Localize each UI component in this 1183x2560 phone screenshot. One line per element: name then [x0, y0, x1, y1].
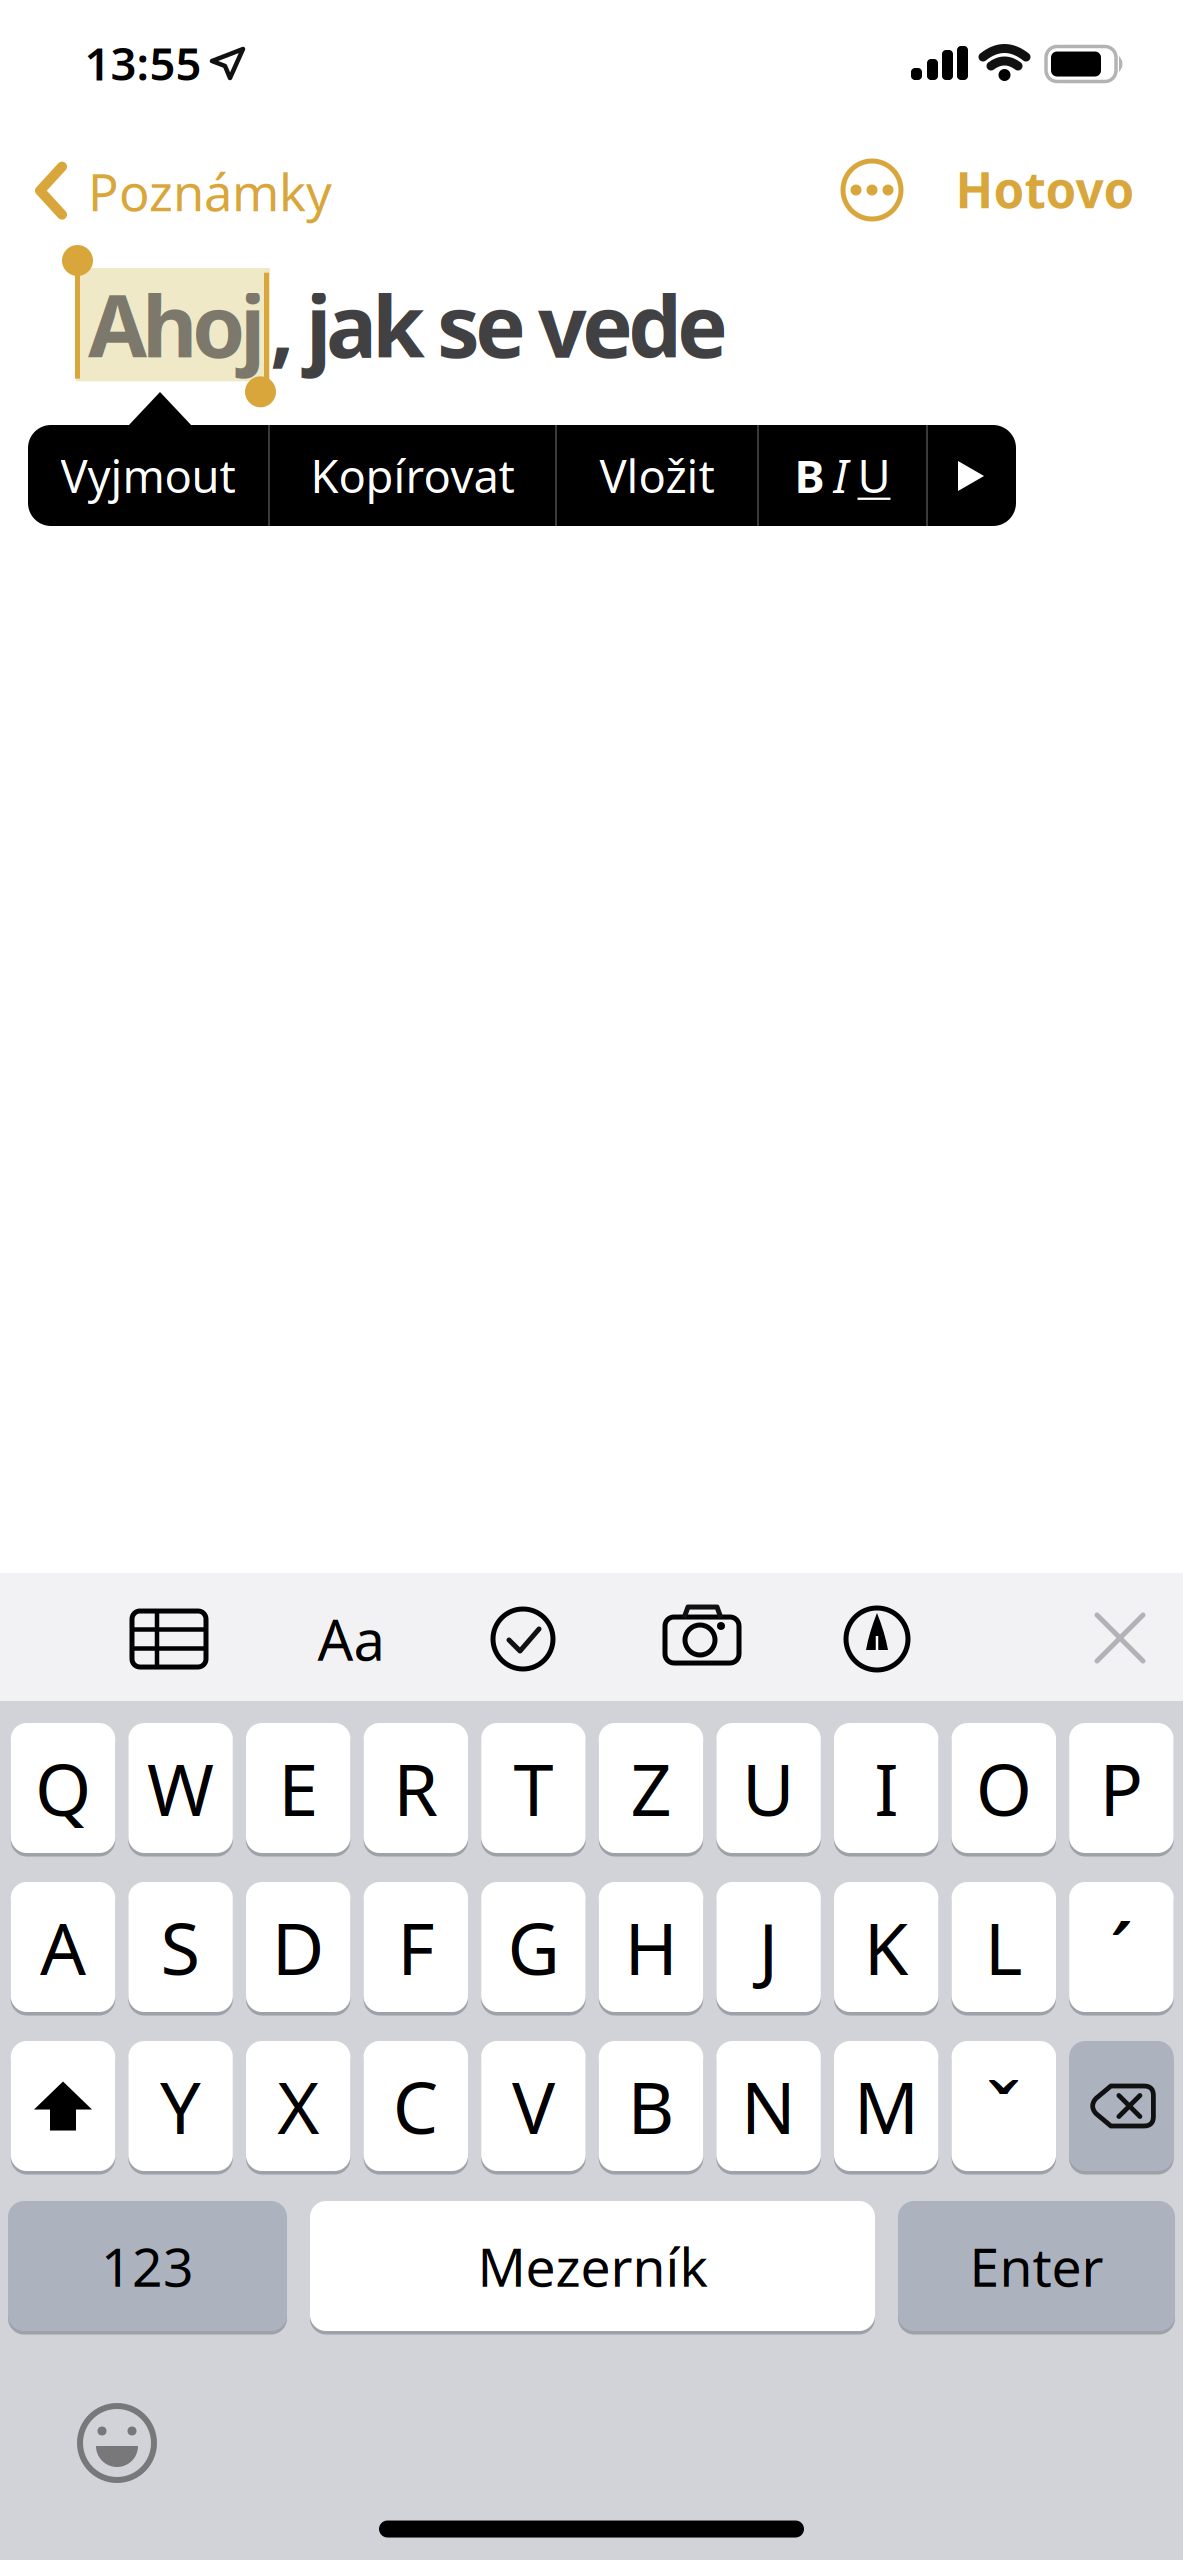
- button[interactable]: Delete: [1069, 2041, 1174, 2171]
- button[interactable]: F: [363, 1882, 468, 2012]
- staticText: P: [1099, 1740, 1143, 1836]
- staticText: K: [864, 1899, 909, 1995]
- staticText: X: [277, 2058, 319, 2154]
- staticText: L: [985, 1899, 1023, 1995]
- staticText: Z: [630, 1740, 671, 1836]
- button[interactable]: K: [834, 1882, 938, 2012]
- staticText: C: [393, 2058, 439, 2154]
- staticText: N: [741, 2058, 796, 2154]
- button[interactable]: Hotovo: [955, 156, 1134, 222]
- staticText: U: [857, 445, 890, 506]
- staticText: Hotovo: [955, 156, 1134, 222]
- button[interactable]: Formatting: [759, 425, 926, 526]
- staticText: Mezerník: [477, 2231, 707, 2301]
- button[interactable]: G: [481, 1882, 586, 2012]
- button[interactable]: Shift: [11, 2041, 115, 2171]
- staticText: Enter: [969, 2231, 1103, 2301]
- staticText: B: [794, 445, 824, 506]
- button[interactable]: More: [837, 155, 907, 225]
- staticText: , jak se vede: [270, 268, 728, 381]
- button[interactable]: Vyjmout: [28, 425, 268, 526]
- staticText: B: [627, 2058, 674, 2154]
- button[interactable]: E: [246, 1723, 350, 1853]
- button[interactable]: W: [128, 1723, 233, 1853]
- button[interactable]: V: [481, 2041, 586, 2171]
- button[interactable]: H: [599, 1882, 703, 2012]
- button[interactable]: P: [1069, 1723, 1174, 1853]
- staticText: A: [40, 1899, 86, 1995]
- staticText: D: [272, 1899, 325, 1995]
- staticText: F: [397, 1899, 434, 1995]
- button[interactable]: 123: [8, 2201, 287, 2331]
- staticText: W: [147, 1740, 214, 1836]
- button[interactable]: Checklist: [473, 1589, 573, 1689]
- staticText: ´: [1109, 1897, 1133, 2011]
- staticText: 123: [101, 2231, 194, 2301]
- button[interactable]: U: [716, 1723, 821, 1853]
- staticText: I: [874, 1740, 898, 1836]
- button[interactable]: Enter: [898, 2201, 1175, 2331]
- staticText: Kopírovat: [310, 445, 514, 506]
- button[interactable]: D: [246, 1882, 350, 2012]
- button[interactable]: Insert table: [119, 1589, 219, 1689]
- staticText: T: [513, 1740, 553, 1836]
- staticText: Q: [35, 1740, 91, 1836]
- button[interactable]: Markup: [827, 1589, 927, 1689]
- button[interactable]: J: [716, 1882, 821, 2012]
- staticText: Vložit: [599, 445, 714, 506]
- button[interactable]: I: [834, 1723, 938, 1853]
- button[interactable]: Vložit: [557, 425, 757, 526]
- staticText: G: [507, 1899, 559, 1995]
- button[interactable]: C: [363, 2041, 468, 2171]
- button[interactable]: Kopírovat: [270, 425, 555, 526]
- staticText: H: [624, 1899, 677, 1995]
- button[interactable]: Z: [599, 1723, 703, 1853]
- staticText: V: [512, 2058, 555, 2154]
- staticText: U: [742, 1740, 795, 1836]
- button[interactable]: X: [246, 2041, 350, 2171]
- button[interactable]: O: [951, 1723, 1056, 1853]
- staticText: R: [393, 1740, 438, 1836]
- button[interactable]: B: [599, 2041, 703, 2171]
- staticText: I: [833, 445, 848, 506]
- button[interactable]: Q: [11, 1723, 115, 1853]
- staticText: 13:55: [84, 33, 201, 93]
- staticText: Ahoj: [88, 268, 265, 381]
- button[interactable]: S: [128, 1882, 233, 2012]
- button[interactable]: M: [834, 2041, 938, 2171]
- button[interactable]: ´: [1069, 1882, 1174, 2012]
- button[interactable]: Emoji: [67, 2393, 167, 2493]
- staticText: Aa: [317, 1602, 384, 1676]
- button[interactable]: Text format: [296, 1589, 406, 1689]
- button[interactable]: More menu items: [928, 425, 1016, 526]
- button[interactable]: N: [716, 2041, 821, 2171]
- button[interactable]: R: [363, 1723, 468, 1853]
- button[interactable]: L: [951, 1882, 1056, 2012]
- button[interactable]: Insert photo: [647, 1589, 757, 1689]
- button[interactable]: A: [11, 1882, 115, 2012]
- staticText: Poznámky: [88, 158, 332, 225]
- staticText: E: [278, 1740, 318, 1836]
- staticText: S: [161, 1899, 201, 1995]
- staticText: O: [976, 1740, 1032, 1836]
- button[interactable]: ˇ: [951, 2041, 1056, 2171]
- staticText: Y: [160, 2058, 201, 2154]
- staticText: Vyjmout: [60, 445, 235, 506]
- button[interactable]: Poznámky: [38, 158, 332, 225]
- staticText: M: [854, 2058, 919, 2154]
- button[interactable]: Y: [128, 2041, 233, 2171]
- button[interactable]: T: [481, 1723, 586, 1853]
- staticText: J: [759, 1899, 779, 1995]
- button[interactable]: Dismiss keyboard: [1069, 1589, 1169, 1689]
- staticText: ˇ: [986, 2056, 1022, 2170]
- button[interactable]: Mezerník: [310, 2201, 875, 2331]
